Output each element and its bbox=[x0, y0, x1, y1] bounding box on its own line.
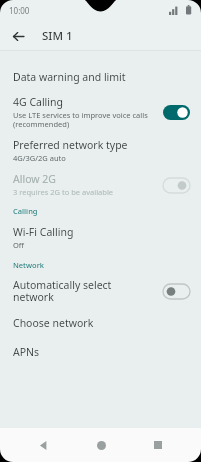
button[interactable]: Data warning and limit bbox=[0, 62, 201, 91]
staticText: Choose network bbox=[13, 316, 94, 330]
button[interactable]: APNs bbox=[0, 337, 201, 366]
staticText: 4G Calling bbox=[13, 95, 63, 109]
staticText: 10:00 bbox=[9, 5, 30, 16]
staticText: Off bbox=[13, 240, 25, 250]
staticText: SIM 1 bbox=[42, 28, 73, 44]
button[interactable]: Back bbox=[6, 24, 30, 48]
staticText: Preferred network type bbox=[13, 138, 128, 152]
staticText: APNs bbox=[13, 345, 40, 359]
staticText: Data warning and limit bbox=[13, 70, 126, 84]
staticText: Network bbox=[13, 260, 44, 270]
staticText: Use LTE services to improve voice calls … bbox=[13, 110, 148, 129]
button[interactable]: Allow 2G bbox=[0, 168, 201, 201]
button[interactable]: Back bbox=[29, 431, 57, 459]
button[interactable]: 4G Calling bbox=[0, 91, 201, 133]
button[interactable]: Home bbox=[87, 431, 115, 459]
button[interactable]: On bbox=[159, 175, 193, 195]
staticText: Allow 2G bbox=[13, 172, 56, 186]
staticText: Automatically select network bbox=[13, 278, 112, 304]
button[interactable]: Wi-Fi Calling bbox=[0, 220, 201, 255]
button[interactable]: On bbox=[159, 102, 193, 122]
button[interactable]: Choose network bbox=[0, 308, 201, 337]
staticText: 4G/3G/2G auto bbox=[13, 153, 66, 163]
staticText: Calling bbox=[13, 206, 38, 216]
staticText: 3 requires 2G to be available bbox=[13, 187, 114, 197]
staticText: Wi-Fi Calling bbox=[13, 225, 74, 239]
button[interactable]: Off bbox=[159, 281, 193, 301]
button[interactable]: Preferred network type bbox=[0, 133, 201, 168]
button[interactable]: Recents bbox=[144, 431, 172, 459]
button[interactable]: Automatically select network bbox=[0, 274, 201, 308]
